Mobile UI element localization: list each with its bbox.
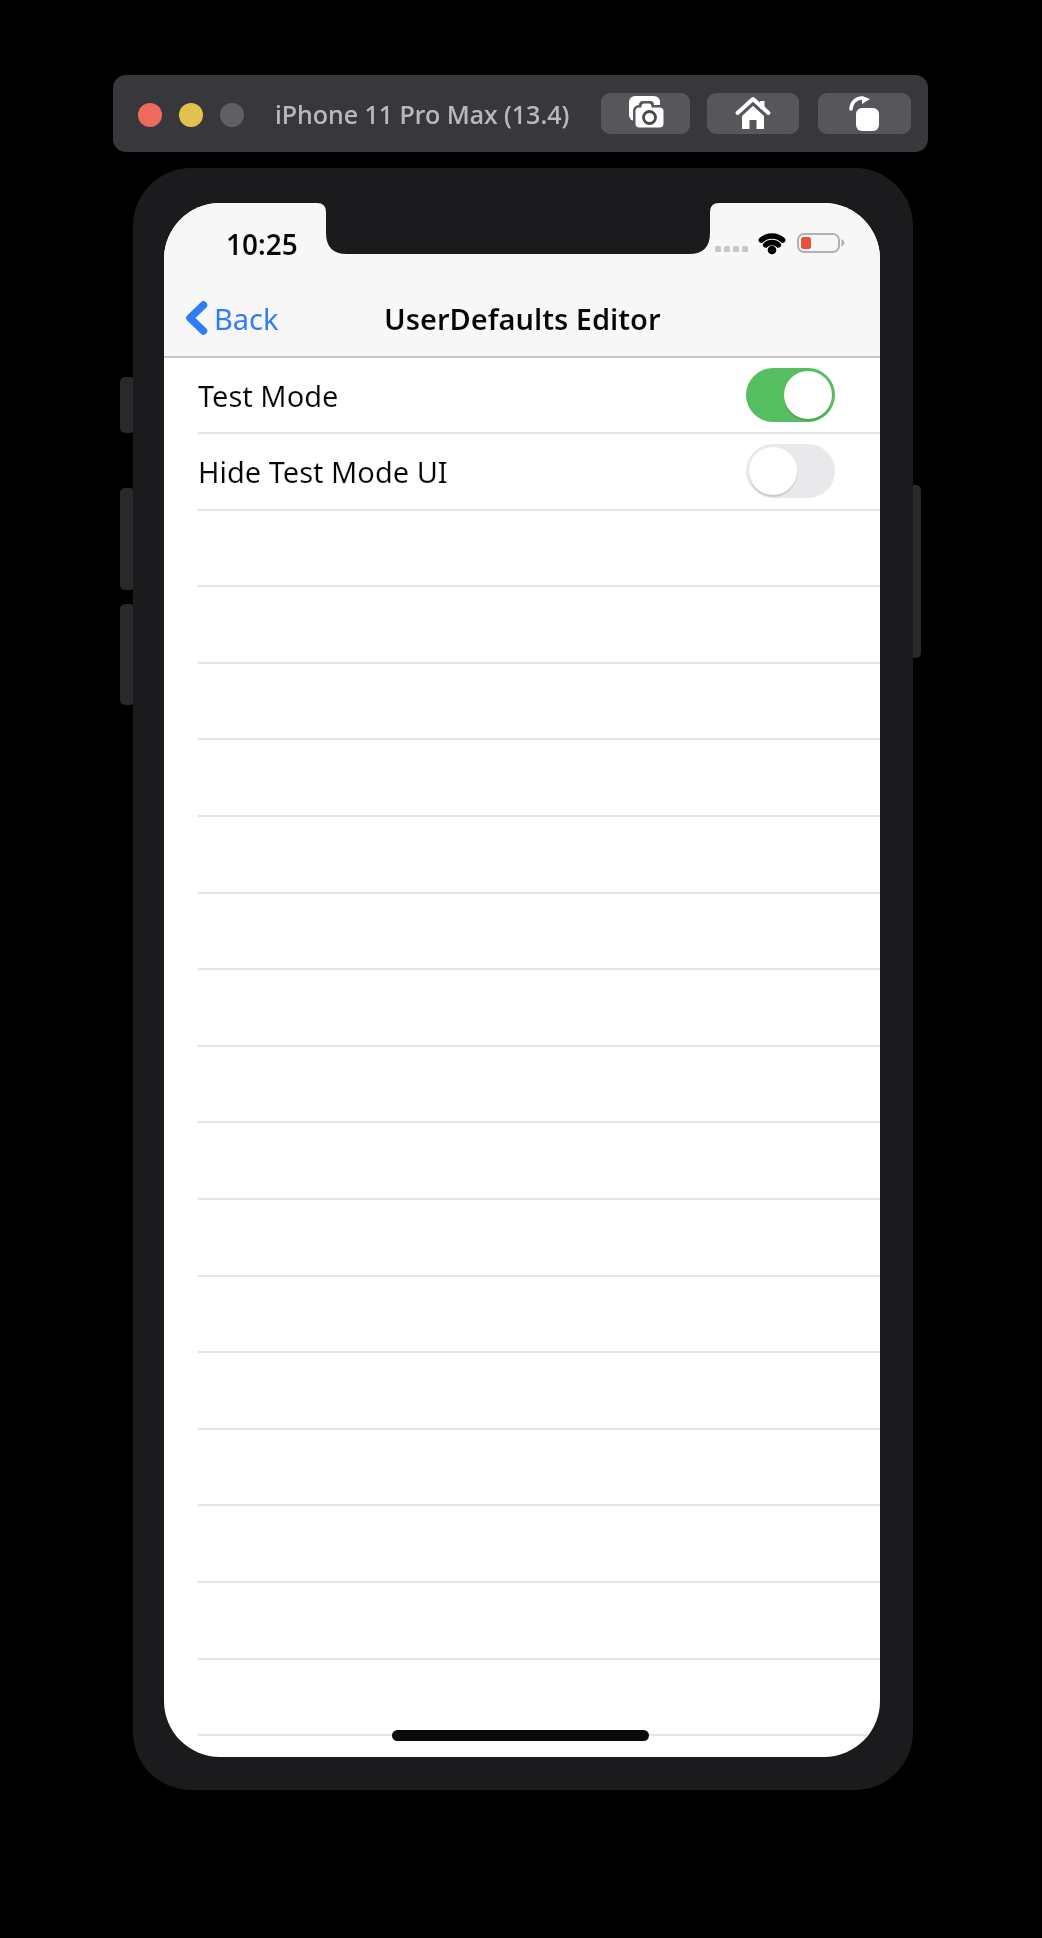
button[interactable] [746,444,835,498]
button[interactable] [601,93,690,134]
button[interactable] [818,93,911,134]
staticText: iPhone 11 Pro Max (13.4) [275,97,570,131]
staticText: UserDefaults Editor [384,299,661,338]
staticText: Hide Test Mode UI [198,452,448,491]
button[interactable] [138,103,162,127]
button[interactable] [707,93,799,134]
staticText: Back [214,299,279,338]
button[interactable] [179,103,203,127]
staticText: Test Mode [198,376,339,415]
button[interactable]: Hide Test Mode UI [164,434,880,509]
button[interactable]: Test Mode [164,358,880,432]
button[interactable] [220,103,244,127]
button[interactable]: Back [178,295,243,341]
button[interactable] [746,368,835,422]
staticText: 10:25 [226,225,298,261]
